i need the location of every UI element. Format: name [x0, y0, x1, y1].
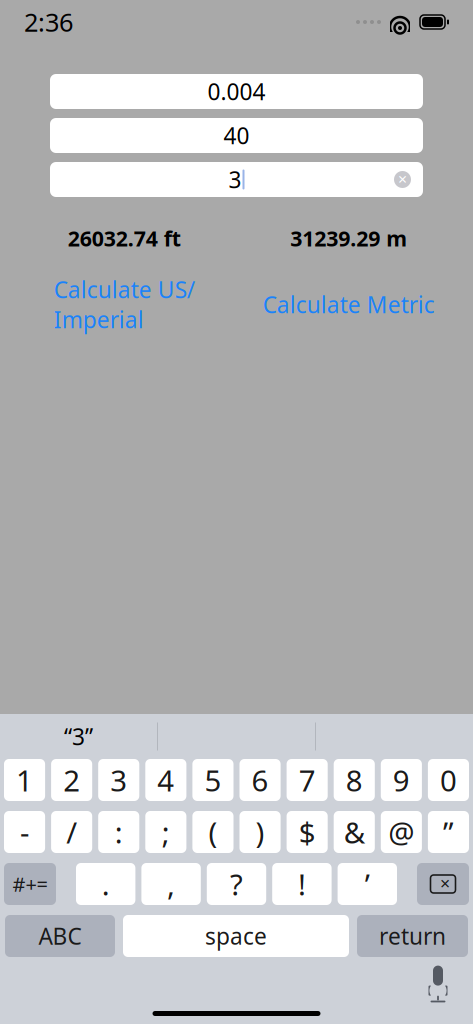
button[interactable]: ;: [145, 811, 186, 853]
staticText: (: [208, 812, 217, 851]
staticText: .: [102, 864, 110, 903]
button[interactable]: 5: [192, 759, 233, 801]
staticText: 26032.74 ft: [68, 224, 181, 252]
button[interactable]: @: [381, 811, 422, 853]
button[interactable]: 8: [334, 759, 375, 801]
staticText: ABC: [38, 921, 81, 951]
staticText: 2:36: [24, 5, 73, 39]
button[interactable]: 4: [145, 759, 186, 801]
button[interactable]: $: [287, 811, 328, 853]
staticText: @: [388, 812, 414, 851]
button[interactable]: /: [51, 811, 92, 853]
staticText: Calculate Metric: [263, 289, 435, 319]
button[interactable]: 0: [428, 759, 469, 801]
staticText: #+=: [12, 871, 47, 897]
staticText: !: [298, 864, 306, 903]
staticText: 9: [393, 760, 410, 799]
button[interactable]: ): [239, 811, 281, 853]
staticText: return: [379, 921, 446, 951]
button[interactable]: space: [123, 915, 349, 957]
staticText: 2: [63, 760, 80, 799]
button[interactable]: ?: [207, 863, 266, 905]
staticText: 6: [252, 760, 269, 799]
staticText: 3: [228, 164, 241, 194]
button[interactable]: Calculate Metric: [236, 289, 461, 319]
staticText: ✕: [439, 876, 450, 891]
staticText: “3”: [64, 721, 93, 751]
staticText: Calculate US/Imperial: [54, 274, 195, 334]
staticText: /: [66, 812, 77, 851]
staticText: 8: [346, 760, 363, 799]
staticText: 40: [223, 120, 249, 150]
button[interactable]: (: [192, 811, 233, 853]
button[interactable]: “3”: [0, 714, 157, 759]
button[interactable]: :: [98, 811, 139, 853]
staticText: 5: [204, 760, 221, 799]
button[interactable]: ’: [338, 863, 397, 905]
button[interactable]: 3: [50, 162, 423, 197]
button[interactable]: -: [4, 811, 45, 853]
staticText: $: [299, 812, 316, 851]
button[interactable]: &: [334, 811, 375, 853]
staticText: ,: [167, 864, 175, 903]
staticText: space: [205, 921, 267, 951]
button[interactable]: Calculate US/Imperial: [12, 274, 236, 334]
staticText: 31239.29 m: [290, 224, 407, 252]
staticText: ;: [162, 812, 170, 851]
staticText: 7: [299, 760, 316, 799]
staticText: 0: [440, 760, 457, 799]
button[interactable]: .: [76, 863, 135, 905]
staticText: 1: [16, 760, 33, 799]
button[interactable]: ”: [428, 811, 469, 853]
button[interactable]: ABC: [5, 915, 115, 957]
button[interactable]: Delete: [417, 863, 469, 905]
staticText: -: [20, 812, 29, 851]
button[interactable]: Dictation: [423, 964, 453, 1004]
button[interactable]: 6: [239, 759, 281, 801]
staticText: :: [115, 812, 123, 851]
staticText: 0.004: [207, 76, 265, 106]
staticText: ’: [365, 864, 370, 903]
staticText: 4: [157, 760, 174, 799]
staticText: &: [344, 812, 365, 851]
button[interactable]: 1: [4, 759, 45, 801]
button[interactable]: ,: [141, 863, 201, 905]
button[interactable]: #+=: [4, 863, 56, 905]
button[interactable]: 7: [287, 759, 328, 801]
button[interactable]: 9: [381, 759, 422, 801]
staticText: ”: [443, 812, 454, 851]
staticText: ?: [230, 864, 243, 903]
button[interactable]: 0.004: [50, 74, 423, 109]
button[interactable]: 3: [98, 759, 139, 801]
staticText: 3: [110, 760, 127, 799]
button[interactable]: !: [272, 863, 332, 905]
button[interactable]: 2: [51, 759, 92, 801]
staticText: ✕: [397, 173, 407, 186]
staticText: ): [256, 812, 265, 851]
button[interactable]: 40: [50, 118, 423, 153]
button[interactable]: return: [357, 915, 468, 957]
